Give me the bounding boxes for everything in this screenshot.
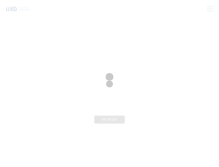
staticText: WEITERLESEN [101, 118, 117, 121]
staticText: ukb [6, 5, 17, 13]
button[interactable]: ukb [0, 1, 29, 16]
button[interactable]: WEITERLESEN [94, 116, 125, 124]
